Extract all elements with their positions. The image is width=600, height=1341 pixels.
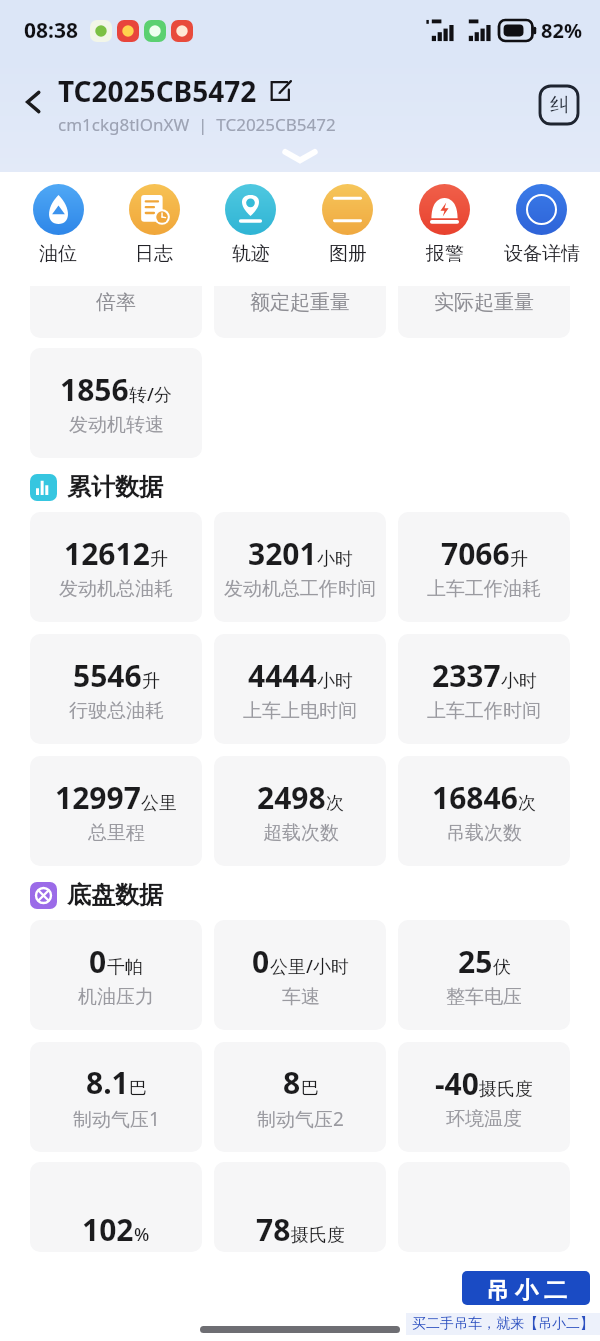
button[interactable]: -40 <box>398 1042 570 1152</box>
staticText: 油位 <box>39 242 77 266</box>
staticText: 巴 <box>301 1077 319 1100</box>
button[interactable]: 实际起重量 <box>398 286 570 338</box>
button[interactable]: 日志 <box>106 180 202 270</box>
staticText: 8.1 <box>86 1062 129 1103</box>
staticText: 2498 <box>257 777 326 818</box>
staticText: 环境温度 <box>446 1107 522 1131</box>
button[interactable]: 报警 <box>396 180 493 270</box>
staticText: 小时 <box>501 670 537 693</box>
staticText: 千帕 <box>107 956 143 979</box>
staticText: 发动机总工作时间 <box>224 577 376 601</box>
button[interactable]: 25 <box>398 920 570 1030</box>
staticText: 摄氏度 <box>479 1078 533 1101</box>
staticText: 4444 <box>248 655 317 696</box>
staticText: 发动机总油耗 <box>59 577 173 601</box>
button[interactable]: 额定起重量 <box>214 286 386 338</box>
staticText: 总里程 <box>88 821 145 845</box>
button[interactable]: 8.1 <box>30 1042 202 1152</box>
staticText: 吊 小 二 <box>486 1273 567 1304</box>
staticText: -40 <box>435 1063 479 1104</box>
button[interactable]: 16846 <box>398 756 570 866</box>
staticText: 倍率 <box>96 290 136 315</box>
staticText: 巴 <box>129 1077 147 1100</box>
button[interactable]: 0 <box>30 920 202 1030</box>
button[interactable]: Edit name <box>267 78 293 104</box>
staticText: 次 <box>326 792 344 815</box>
staticText: 08:38 <box>24 16 78 45</box>
staticText: 82% <box>541 17 582 44</box>
staticText: 16846 <box>432 777 518 818</box>
staticText: 78 <box>256 1209 291 1250</box>
button[interactable]: 3201 <box>214 512 386 622</box>
staticText: 日志 <box>135 242 173 266</box>
staticText: 买二手吊车，就来【吊小二】 <box>412 1315 594 1333</box>
button[interactable]: 4444 <box>214 634 386 744</box>
staticText: 轨迹 <box>232 242 270 266</box>
button[interactable]: 0 <box>214 920 386 1030</box>
button[interactable]: 油位 <box>10 180 106 270</box>
button[interactable]: 5546 <box>30 634 202 744</box>
staticText: 纠 <box>550 93 569 117</box>
button[interactable]: 102 <box>30 1162 202 1252</box>
staticText: 12612 <box>64 533 150 574</box>
button[interactable]: 78 <box>214 1162 386 1252</box>
button[interactable]: 2498 <box>214 756 386 866</box>
staticText: 小时 <box>317 548 353 571</box>
button[interactable]: 8 <box>214 1042 386 1152</box>
staticText: 累计数据 <box>67 472 163 502</box>
staticText: 升 <box>150 548 168 571</box>
staticText: 102 <box>82 1209 134 1250</box>
staticText: 2337 <box>432 655 501 696</box>
staticText: 伏 <box>493 956 511 979</box>
staticText: 底盘数据 <box>67 880 163 910</box>
button[interactable]: 设备详情 <box>493 180 590 270</box>
staticText: 设备详情 <box>504 242 580 266</box>
staticText: 上车工作油耗 <box>427 577 541 601</box>
staticText: 上车上电时间 <box>243 699 357 723</box>
staticText: 摄氏度 <box>291 1224 345 1247</box>
staticText: 小时 <box>317 670 353 693</box>
staticText: TC2025CB5472 <box>58 72 257 110</box>
staticText: 12997 <box>55 777 141 818</box>
staticText: 0 <box>89 941 107 982</box>
button[interactable]: Expand <box>277 146 323 166</box>
button[interactable]: 图册 <box>299 180 396 270</box>
staticText: 整车电压 <box>446 985 522 1009</box>
staticText: 升 <box>142 670 160 693</box>
staticText: % <box>134 1222 150 1247</box>
staticText: cm1ckg8tlOnXW | TC2025CB5472 <box>58 113 336 136</box>
button[interactable]: 纠错 <box>540 86 578 124</box>
staticText: 发动机转速 <box>69 413 164 437</box>
button[interactable]: 12612 <box>30 512 202 622</box>
staticText: 行驶总油耗 <box>69 699 164 723</box>
staticText: 额定起重量 <box>250 290 350 315</box>
button[interactable]: 吊 小 二 <box>462 1271 590 1305</box>
staticText: 0 <box>252 941 270 982</box>
button[interactable]: 12997 <box>30 756 202 866</box>
staticText: 次 <box>518 792 536 815</box>
staticText: 升 <box>510 548 528 571</box>
button[interactable]: 1856 <box>30 348 202 458</box>
staticText: 车速 <box>282 985 320 1009</box>
staticText: 制动气压2 <box>257 1106 344 1132</box>
staticText: 25 <box>458 941 493 982</box>
staticText: 图册 <box>329 242 367 266</box>
staticText: 8 <box>283 1062 301 1103</box>
staticText: 3201 <box>248 533 317 574</box>
staticText: 吊载次数 <box>446 821 522 845</box>
staticText: 公里/小时 <box>270 954 349 979</box>
button[interactable]: 2337 <box>398 634 570 744</box>
staticText: 转/分 <box>129 382 172 407</box>
button[interactable]: 7066 <box>398 512 570 622</box>
staticText: 实际起重量 <box>434 290 534 315</box>
staticText: 5546 <box>73 655 142 696</box>
staticText: 报警 <box>426 242 464 266</box>
staticText: 机油压力 <box>78 985 154 1009</box>
button[interactable]: 轨迹 <box>202 180 299 270</box>
staticText: 制动气压1 <box>73 1106 160 1132</box>
button[interactable]: 倍率 <box>30 286 202 338</box>
button[interactable]: Back <box>14 82 54 122</box>
staticText: 1856 <box>60 369 129 410</box>
staticText: 上车工作时间 <box>427 699 541 723</box>
